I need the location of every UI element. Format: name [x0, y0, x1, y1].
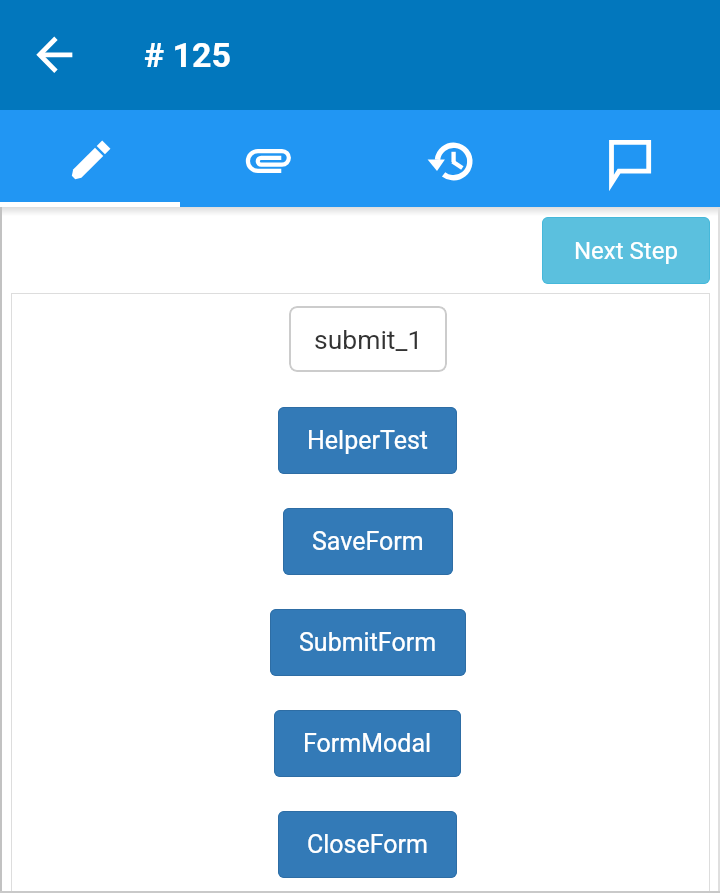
- staticText: HelperTest: [307, 426, 428, 455]
- button[interactable]: CloseForm: [278, 811, 457, 878]
- button[interactable]: Back: [0, 0, 112, 110]
- staticText: Next Step: [574, 237, 678, 265]
- staticText: CloseForm: [307, 830, 428, 859]
- staticText: SaveForm: [312, 527, 424, 556]
- staticText: # 125: [144, 35, 232, 75]
- button[interactable]: submit_1: [289, 306, 447, 372]
- button[interactable]: FormModal: [274, 710, 461, 777]
- button[interactable]: HelperTest: [278, 407, 457, 474]
- button[interactable]: Edit: [0, 110, 180, 207]
- staticText: submit_1: [314, 324, 423, 355]
- button[interactable]: SaveForm: [283, 508, 453, 575]
- button[interactable]: Next Step: [542, 217, 710, 284]
- button[interactable]: Comments: [540, 110, 720, 207]
- staticText: FormModal: [303, 729, 432, 758]
- staticText: SubmitForm: [299, 628, 437, 657]
- button[interactable]: Attachments: [180, 110, 360, 207]
- button[interactable]: History: [360, 110, 540, 207]
- button[interactable]: SubmitForm: [270, 609, 466, 676]
